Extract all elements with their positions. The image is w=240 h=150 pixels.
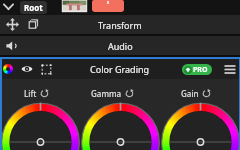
button[interactable]: Audio xyxy=(0,36,240,55)
button[interactable]: Root xyxy=(20,1,47,14)
button[interactable]: PRO xyxy=(182,64,212,75)
staticText: Color Grading xyxy=(90,63,150,75)
button[interactable] xyxy=(3,3,14,11)
staticText: Audio xyxy=(108,40,133,52)
staticText: Transform xyxy=(98,19,142,31)
button[interactable]: Transform xyxy=(0,15,240,34)
staticText: PRO xyxy=(193,65,208,75)
staticText: Gamma xyxy=(91,88,122,98)
staticText: Lift xyxy=(24,88,37,98)
button[interactable] xyxy=(92,0,124,12)
button[interactable]: Color Grading xyxy=(0,59,240,79)
button[interactable] xyxy=(224,65,236,74)
button[interactable] xyxy=(62,0,87,12)
staticText: Gain xyxy=(181,88,199,98)
staticText: Root xyxy=(24,2,43,13)
